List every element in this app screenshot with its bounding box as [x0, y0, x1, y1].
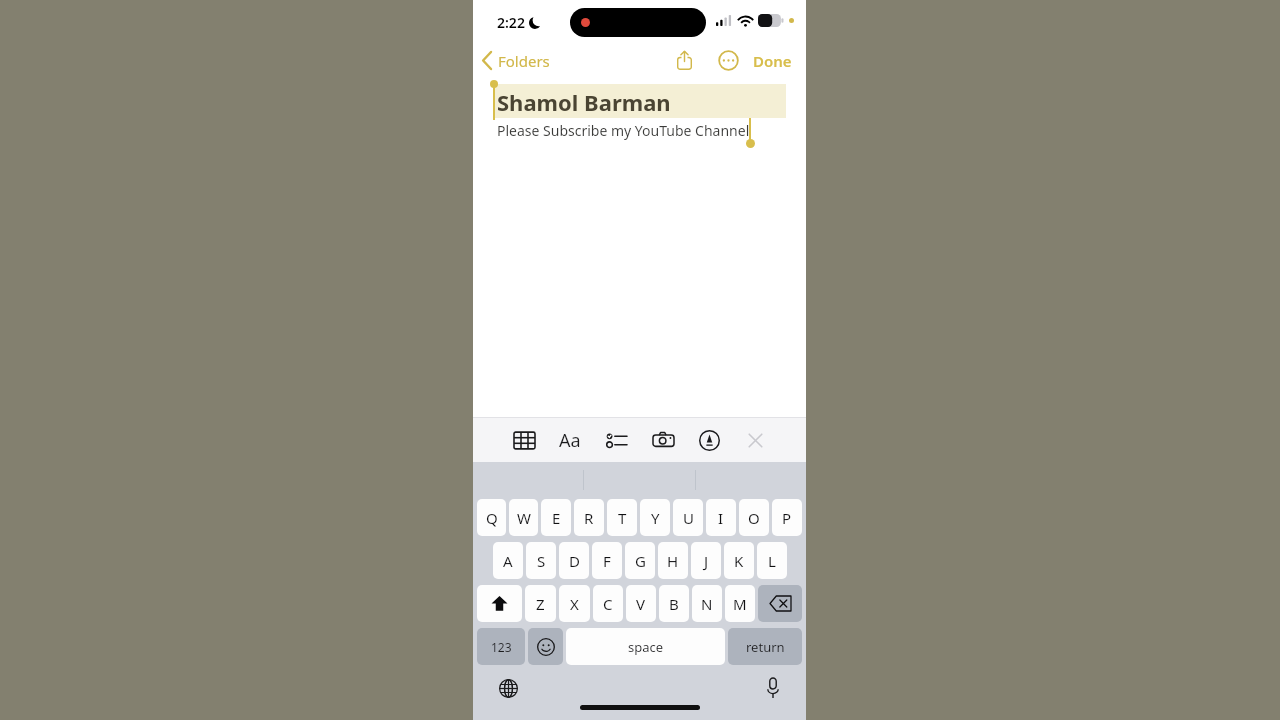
- button[interactable]: Emoji: [528, 628, 563, 665]
- staticText: Done: [753, 51, 792, 71]
- button[interactable]: Markup: [692, 420, 726, 460]
- button[interactable]: Z: [525, 585, 556, 622]
- button[interactable]: V: [626, 585, 656, 622]
- staticText: K: [734, 551, 744, 571]
- button[interactable]: Dictation: [758, 673, 788, 703]
- staticText: Y: [651, 508, 660, 528]
- staticText: B: [669, 594, 679, 614]
- button[interactable]: Change keyboard: [493, 673, 523, 703]
- button[interactable]: N: [692, 585, 722, 622]
- button[interactable]: E: [541, 499, 571, 536]
- button[interactable]: U: [673, 499, 703, 536]
- staticText: N: [701, 594, 713, 614]
- button[interactable]: G: [625, 542, 655, 579]
- staticText: M: [733, 594, 747, 614]
- staticText: W: [517, 508, 531, 528]
- staticText: Q: [486, 508, 498, 528]
- staticText: X: [570, 594, 579, 614]
- staticText: 123: [491, 639, 512, 655]
- button[interactable]: S: [526, 542, 556, 579]
- button[interactable]: Shift: [477, 585, 522, 622]
- staticText: I: [718, 508, 724, 528]
- button[interactable]: Q: [477, 499, 506, 536]
- button[interactable]: 123: [477, 628, 525, 665]
- staticText: Shamol Barman: [497, 87, 671, 117]
- button[interactable]: Table: [507, 420, 541, 460]
- staticText: Folders: [498, 51, 550, 71]
- staticText: H: [667, 551, 679, 571]
- button[interactable]: W: [509, 499, 538, 536]
- button[interactable]: F: [592, 542, 622, 579]
- staticText: D: [569, 551, 580, 571]
- button[interactable]: T: [607, 499, 637, 536]
- staticText: Please Subscribe my YouTube Channel: [497, 121, 750, 140]
- staticText: V: [636, 594, 646, 614]
- button[interactable]: Done: [753, 45, 792, 76]
- button[interactable]: Aa: [553, 420, 587, 460]
- staticText: T: [618, 508, 627, 528]
- staticText: E: [552, 508, 561, 528]
- button[interactable]: H: [658, 542, 688, 579]
- button[interactable]: C: [593, 585, 623, 622]
- button[interactable]: Camera: [646, 420, 680, 460]
- staticText: Z: [536, 594, 545, 614]
- staticText: Aa: [559, 428, 581, 453]
- staticText: C: [603, 594, 613, 614]
- button[interactable]: Share: [669, 45, 699, 76]
- button[interactable]: B: [659, 585, 689, 622]
- button[interactable]: K: [724, 542, 754, 579]
- staticText: J: [704, 551, 709, 571]
- button[interactable]: O: [739, 499, 769, 536]
- button[interactable]: return: [728, 628, 802, 665]
- staticText: R: [584, 508, 594, 528]
- staticText: A: [503, 551, 513, 571]
- button[interactable]: Folders: [482, 45, 550, 76]
- staticText: S: [537, 551, 546, 571]
- button[interactable]: L: [757, 542, 787, 579]
- button[interactable]: Y: [640, 499, 670, 536]
- staticText: O: [748, 508, 760, 528]
- button[interactable]: D: [559, 542, 589, 579]
- button[interactable]: M: [725, 585, 755, 622]
- button[interactable]: More options: [714, 45, 742, 76]
- staticText: G: [635, 551, 646, 571]
- button[interactable]: I: [706, 499, 736, 536]
- staticText: 2:22: [497, 13, 525, 32]
- button[interactable]: J: [691, 542, 721, 579]
- staticText: L: [768, 551, 776, 571]
- staticText: return: [746, 638, 785, 656]
- button[interactable]: Checklist: [599, 420, 633, 460]
- button[interactable]: Backspace: [758, 585, 802, 622]
- staticText: space: [628, 638, 664, 656]
- button[interactable]: X: [559, 585, 590, 622]
- button[interactable]: A: [493, 542, 523, 579]
- staticText: U: [683, 508, 694, 528]
- button[interactable]: P: [772, 499, 802, 536]
- staticText: P: [782, 508, 792, 528]
- button[interactable]: R: [574, 499, 604, 536]
- staticText: F: [603, 551, 611, 571]
- button[interactable]: space: [566, 628, 725, 665]
- button[interactable]: Close keyboard: [738, 420, 772, 460]
